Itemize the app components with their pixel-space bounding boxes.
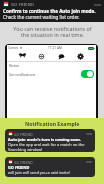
staticText: GO FRIEND bbox=[14, 132, 33, 136]
staticText: Get notifications bbox=[9, 72, 36, 77]
staticText: Auto join mode's turn is coming soon. bbox=[8, 137, 81, 142]
button[interactable]: Chat bbox=[57, 52, 66, 61]
staticText: GO FRIEND bbox=[8, 165, 30, 170]
staticText: Carrier bbox=[8, 46, 19, 50]
button[interactable]: GO FRIEND bbox=[5, 129, 95, 152]
button[interactable]: Settings bbox=[76, 52, 85, 61]
staticText: GO FRIEND bbox=[11, 2, 35, 7]
staticText: You can receive notifications of the sit… bbox=[13, 25, 92, 39]
button[interactable]: Items bbox=[37, 52, 46, 61]
button[interactable]: Get notifications bbox=[9, 70, 94, 78]
staticText: now bbox=[86, 132, 92, 136]
button[interactable]: GO FRIEND bbox=[0, 0, 104, 22]
staticText: will join will send you a raid invite! bbox=[8, 170, 70, 175]
button[interactable]: GO FRIEND bbox=[5, 157, 95, 177]
button[interactable]: Pokedex bbox=[18, 52, 27, 61]
staticText: GO FRIEND bbox=[14, 160, 33, 164]
staticText: Confirm to continue the Auto join mode. bbox=[3, 8, 96, 14]
staticText: Searching window! bbox=[8, 147, 43, 152]
staticText: now bbox=[94, 2, 101, 7]
staticText: now bbox=[86, 160, 92, 164]
staticText: Notice bbox=[9, 63, 20, 68]
staticText: Check the current waiting list order. bbox=[3, 14, 80, 20]
staticText: 11:21 AM bbox=[48, 46, 62, 50]
staticText: Open the app and wait for a match on the… bbox=[8, 142, 92, 147]
staticText: Notification Example bbox=[25, 120, 80, 127]
